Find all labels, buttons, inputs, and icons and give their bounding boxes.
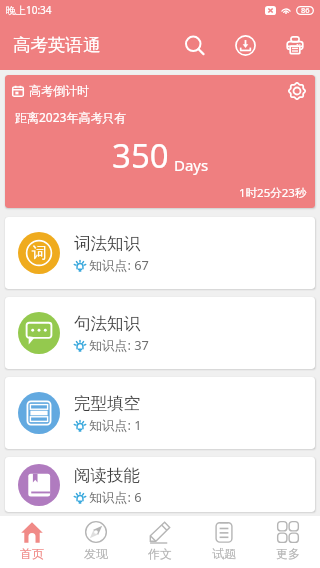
staticText: 知识点: 6	[89, 488, 142, 505]
button[interactable]: Search	[173, 24, 215, 66]
staticText: 阅读技能	[74, 465, 140, 486]
button[interactable]: Settings	[281, 75, 313, 107]
button[interactable]: Download	[224, 24, 266, 66]
staticText: 词	[32, 244, 47, 263]
button[interactable]: Print	[274, 24, 316, 66]
staticText: 知识点: 37	[89, 336, 149, 353]
staticText: 首页	[20, 546, 44, 561]
staticText: 350	[112, 133, 169, 178]
button[interactable]: 词	[5, 217, 315, 289]
button[interactable]: 更多	[256, 516, 320, 568]
staticText: 晚上10:34	[6, 3, 52, 17]
staticText: 句法知识	[74, 313, 140, 334]
button[interactable]: 作文	[128, 516, 192, 568]
staticText: 试题	[212, 546, 236, 561]
staticText: 词法知识	[74, 233, 140, 254]
staticText: 86	[301, 5, 310, 15]
staticText: 完型填空	[74, 393, 140, 414]
staticText: 1时25分23秒	[239, 185, 307, 201]
staticText: 更多	[276, 546, 300, 561]
button[interactable]: 首页	[0, 516, 64, 568]
staticText: 知识点: 1	[89, 416, 142, 433]
staticText: 发现	[84, 546, 108, 561]
button[interactable]: 阅读技能	[5, 457, 315, 512]
staticText: 高考倒计时	[29, 83, 89, 98]
staticText: 作文	[148, 546, 172, 561]
button[interactable]: 完型填空	[5, 377, 315, 449]
staticText: 高考英语通	[13, 34, 101, 56]
button[interactable]: 试题	[192, 516, 256, 568]
staticText: 距离2023年高考只有	[15, 109, 127, 125]
button[interactable]: 高考倒计时	[5, 75, 315, 208]
staticText: 知识点: 67	[89, 256, 149, 273]
staticText: Days	[174, 155, 209, 175]
button[interactable]: 发现	[64, 516, 128, 568]
button[interactable]: 句法知识	[5, 297, 315, 369]
